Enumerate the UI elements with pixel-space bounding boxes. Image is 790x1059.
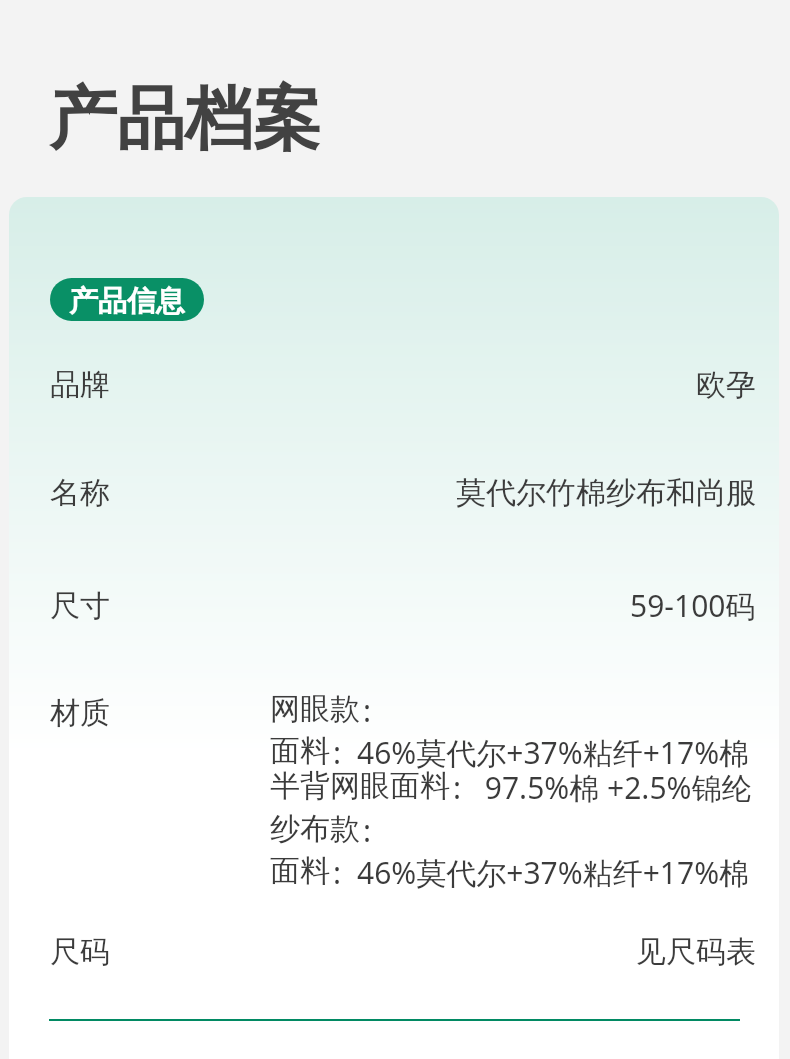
staticText: 尺寸: [50, 587, 110, 625]
staticText: :: [363, 690, 372, 731]
staticText: 面料: [270, 852, 330, 890]
staticText: 名称: [50, 474, 110, 512]
staticText: 品牌: [50, 366, 110, 404]
staticText: 纱布款: [270, 810, 360, 848]
staticText: 材质: [50, 694, 110, 732]
staticText: 欧孕: [696, 366, 756, 404]
staticText: 产品档案: [49, 77, 321, 163]
staticText: :: [333, 732, 342, 773]
staticText: 尺码: [50, 933, 110, 971]
staticText: :: [333, 852, 342, 893]
staticText: 莫代尔竹棉纱布和尚服: [456, 474, 756, 512]
staticText: 半背网眼面料: [270, 767, 450, 805]
staticText: 网眼款: [270, 690, 360, 728]
button[interactable]: 品牌: [9, 366, 779, 404]
staticText: 46%莫代尔+37%粘纤+17%棉: [357, 732, 750, 773]
staticText: :: [453, 767, 462, 808]
staticText: 产品信息: [69, 283, 185, 320]
staticText: 面料: [270, 732, 330, 770]
staticText: :: [363, 810, 372, 851]
button[interactable]: 产品信息: [50, 278, 204, 321]
button[interactable]: 名称: [9, 474, 779, 512]
button[interactable]: 尺码: [9, 933, 779, 971]
staticText: 46%莫代尔+37%粘纤+17%棉: [357, 852, 750, 893]
staticText: 59-100码: [630, 585, 756, 626]
staticText: 97.5%棉 +2.5%锦纶: [477, 767, 752, 808]
button[interactable]: 尺寸: [9, 585, 779, 626]
button[interactable]: 材质: [9, 677, 779, 897]
staticText: 见尺码表: [636, 933, 756, 971]
